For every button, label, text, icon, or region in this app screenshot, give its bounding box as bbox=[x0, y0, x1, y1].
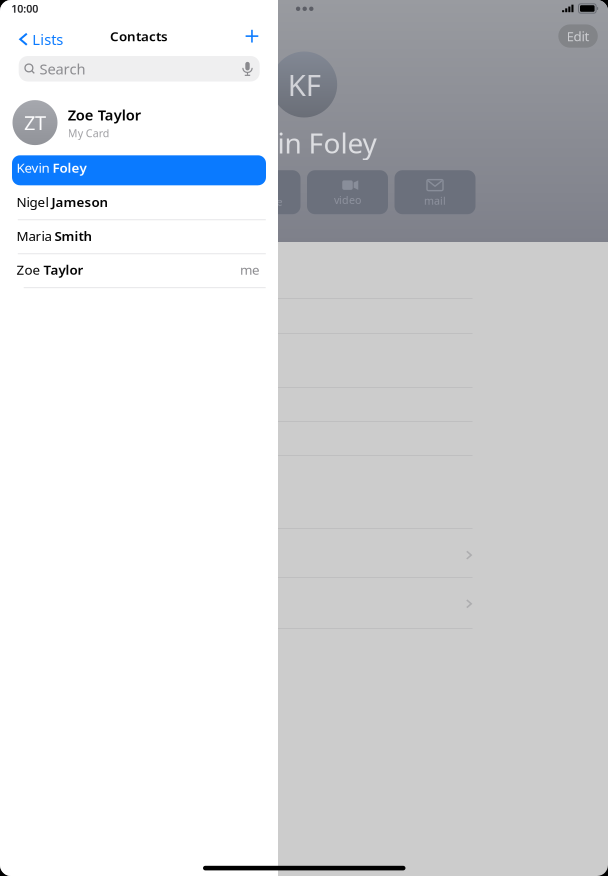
staticText: Edit bbox=[566, 27, 589, 45]
staticText: video bbox=[334, 193, 361, 207]
staticText: Maria bbox=[16, 227, 54, 245]
button[interactable]: Add contact bbox=[240, 24, 264, 48]
button[interactable]: Zoe bbox=[12, 257, 266, 287]
staticText: 10:00 bbox=[11, 2, 38, 16]
staticText: ZT bbox=[24, 109, 46, 136]
staticText: My Card bbox=[68, 126, 110, 140]
staticText: Contacts bbox=[110, 27, 168, 45]
button[interactable]: Nigel bbox=[12, 189, 266, 219]
staticText: Lists bbox=[32, 29, 63, 49]
staticText: Search bbox=[39, 59, 85, 78]
staticText: me bbox=[240, 261, 260, 278]
staticText: Kevin bbox=[16, 159, 52, 176]
button[interactable]: Lists bbox=[14, 25, 68, 53]
staticText: message bbox=[237, 195, 282, 209]
button[interactable]: video bbox=[307, 170, 388, 214]
staticText: Kevin Foley bbox=[231, 124, 376, 161]
button[interactable]: Maria bbox=[12, 223, 266, 253]
staticText: Zoe Taylor bbox=[68, 105, 141, 124]
button[interactable]: ZT bbox=[0, 100, 278, 145]
staticText: Nigel bbox=[16, 193, 51, 211]
staticText: Jameson bbox=[51, 193, 108, 211]
staticText: Foley bbox=[52, 159, 86, 176]
button[interactable]: Edit bbox=[558, 24, 598, 48]
button[interactable]: mail bbox=[394, 170, 475, 214]
staticText: Zoe bbox=[16, 261, 43, 278]
button[interactable]: Search bbox=[19, 56, 260, 81]
button[interactable]: message bbox=[219, 170, 300, 214]
button[interactable]: Kevin bbox=[12, 155, 266, 185]
staticText: Taylor bbox=[43, 261, 83, 278]
staticText: Smith bbox=[54, 227, 92, 245]
staticText: mail bbox=[424, 194, 446, 208]
staticText: KF bbox=[288, 65, 321, 104]
